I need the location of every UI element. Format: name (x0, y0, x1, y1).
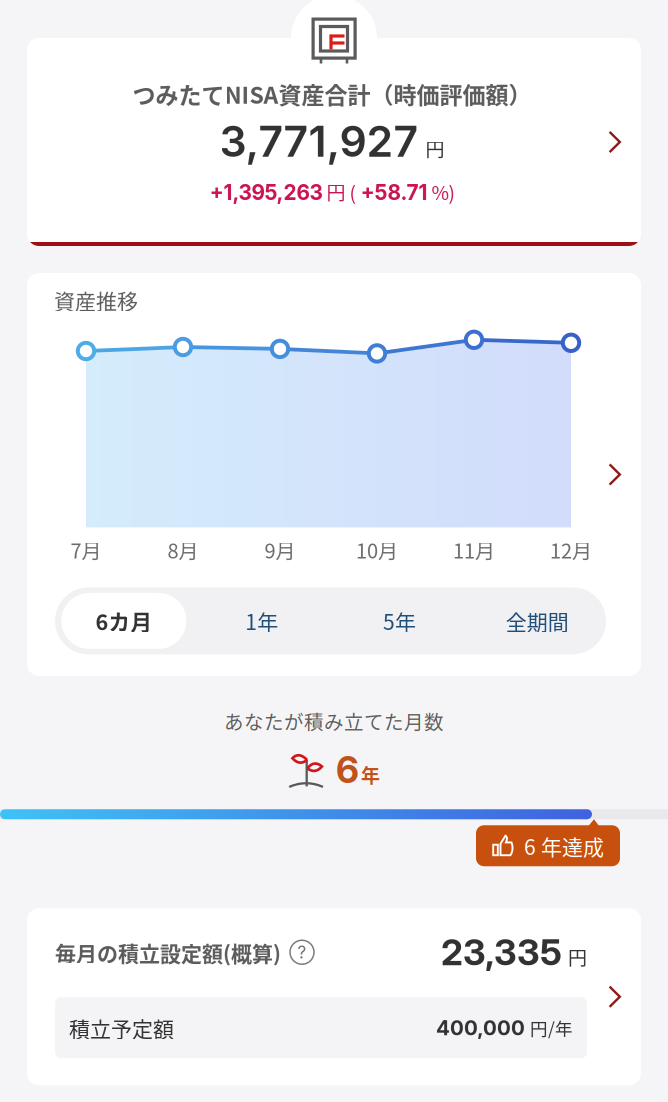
staticText: 6 年達成 (524, 830, 604, 861)
staticText: 5年 (383, 606, 416, 636)
staticText: 全期間 (506, 606, 569, 636)
staticText: +1,395,263 (209, 180, 322, 205)
staticText: 資産推移 (54, 285, 138, 315)
staticText: 毎月の積立設定額(概算) (55, 937, 281, 967)
staticText: つみたてNISA資産合計（時価評価額） (132, 77, 531, 110)
staticText: 400,000 (436, 1015, 525, 1040)
button[interactable]: 毎月の積立設定額(概算) (27, 908, 641, 1085)
button[interactable]: 6カ月 (55, 587, 193, 654)
staticText: ? (297, 942, 306, 963)
staticText: 6 (336, 748, 359, 792)
staticText: 23,335 (441, 930, 562, 974)
staticText: 円/年 (530, 1015, 573, 1040)
staticText: 7月 (70, 535, 101, 564)
staticText: 円 (322, 178, 345, 205)
staticText: 9月 (264, 535, 295, 564)
staticText: 6カ月 (95, 605, 152, 636)
staticText: 10月 (356, 535, 398, 564)
staticText: ( (345, 178, 355, 205)
staticText: 8月 (167, 535, 198, 564)
button[interactable]: 全期間 (468, 587, 606, 654)
button[interactable]: つみたてNISA資産合計（時価評価額） (27, 38, 641, 246)
staticText: 円 (425, 135, 444, 162)
staticText: 年 (361, 761, 380, 788)
button[interactable]: 5年 (330, 587, 468, 654)
staticText: 1年 (245, 606, 278, 636)
staticText: 11月 (453, 535, 495, 564)
staticText: 積立予定額 (69, 1012, 174, 1043)
staticText: 12月 (550, 535, 592, 564)
staticText: %) (427, 178, 454, 205)
staticText: あなたが積み立てた月数 (224, 707, 444, 735)
button[interactable]: 1年 (193, 587, 331, 654)
staticText: 3,771,927 (219, 115, 418, 167)
staticText: +58.71 (355, 180, 427, 205)
staticText: 円 (568, 943, 587, 971)
